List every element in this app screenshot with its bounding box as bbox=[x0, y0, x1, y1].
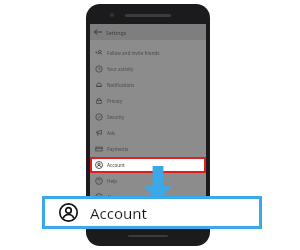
staticText: Settings bbox=[106, 29, 127, 36]
button[interactable]: Back bbox=[90, 24, 106, 40]
button[interactable]: Security bbox=[90, 109, 206, 125]
staticText: Notifications bbox=[107, 82, 135, 88]
button[interactable]: Privacy bbox=[90, 93, 206, 109]
staticText: Payments bbox=[107, 146, 129, 152]
staticText: About bbox=[107, 194, 121, 200]
button[interactable]: Follow and invite friends bbox=[90, 45, 206, 61]
staticText: Account bbox=[90, 203, 148, 223]
staticText: Privacy bbox=[107, 98, 123, 104]
button[interactable]: Your activity bbox=[90, 61, 206, 77]
staticText: Ads bbox=[107, 130, 115, 136]
staticText: Follow and invite friends bbox=[107, 50, 160, 56]
staticText: Your activity bbox=[107, 66, 134, 72]
button[interactable]: Payments bbox=[90, 141, 206, 157]
button[interactable]: Account bbox=[90, 157, 206, 173]
staticText: Help bbox=[107, 178, 118, 184]
button[interactable]: About bbox=[90, 189, 206, 205]
staticText: Account bbox=[107, 162, 125, 168]
button[interactable]: Notifications bbox=[90, 77, 206, 93]
button[interactable]: Ads bbox=[90, 125, 206, 141]
staticText: Security bbox=[107, 114, 125, 120]
button[interactable]: Help bbox=[90, 173, 206, 189]
button[interactable]: Account bbox=[45, 199, 259, 226]
